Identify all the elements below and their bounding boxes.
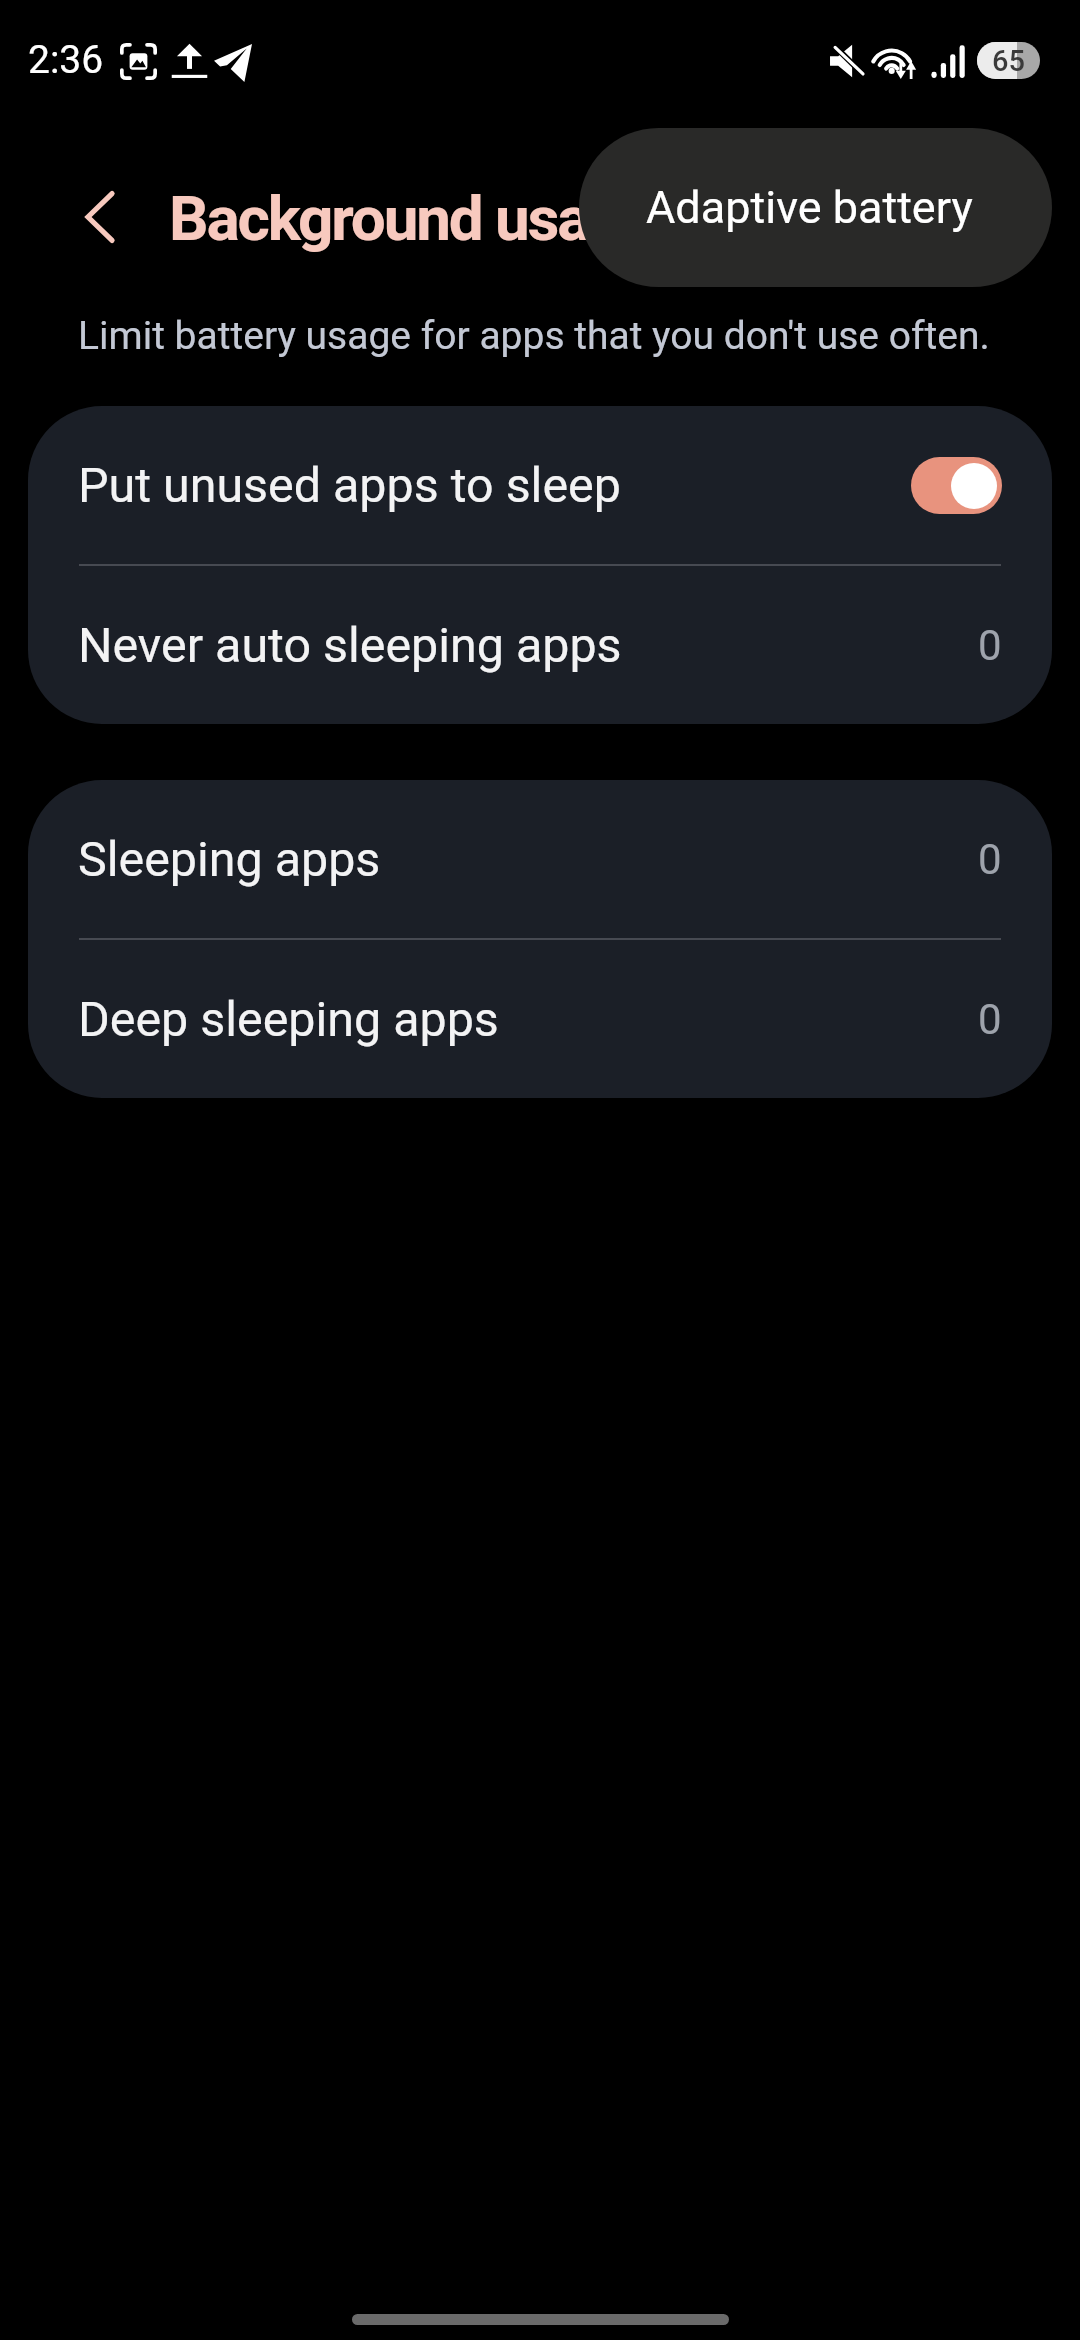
staticText: 0 <box>978 995 1002 1044</box>
staticText: 0 <box>978 835 1002 884</box>
staticText: 0 <box>978 621 1002 670</box>
staticText: Put unused apps to sleep <box>78 457 621 514</box>
button[interactable]: Deep sleeping apps <box>28 940 1052 1098</box>
button[interactable]: Background usage limits <box>169 182 869 254</box>
button[interactable]: Put unused apps to sleep <box>911 457 1002 514</box>
staticText: Background usage limits <box>169 182 810 254</box>
button[interactable]: Sleeping apps <box>28 780 1052 938</box>
button[interactable]: Adaptive battery <box>579 128 1052 287</box>
staticText: 65 <box>992 44 1025 78</box>
button[interactable]: Put unused apps to sleep <box>28 406 1052 564</box>
staticText: Never auto sleeping apps <box>78 617 622 674</box>
staticText: Deep sleeping apps <box>78 991 499 1048</box>
staticText: 2:36 <box>28 37 104 83</box>
staticText: Adaptive battery <box>646 181 973 234</box>
staticText: Limit battery usage for apps that you do… <box>78 313 990 359</box>
staticText: Sleeping apps <box>78 831 381 888</box>
button[interactable]: Back <box>56 173 144 261</box>
button[interactable]: Never auto sleeping apps <box>28 566 1052 724</box>
